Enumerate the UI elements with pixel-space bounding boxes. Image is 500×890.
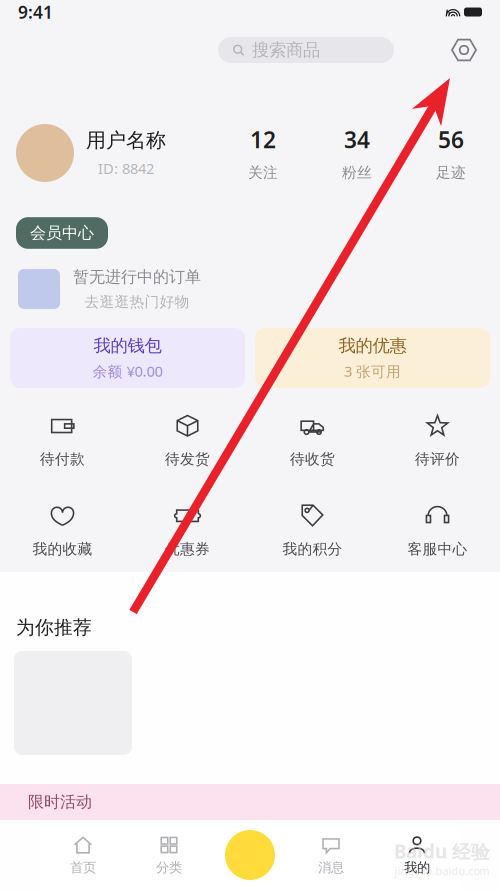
staticText: 消息 [318, 859, 344, 876]
button[interactable]: 限时活动 [0, 784, 500, 820]
staticText: 客服中心 [407, 540, 467, 558]
staticText: 9:41 [18, 0, 53, 23]
button[interactable]: 首页 [40, 831, 126, 879]
staticText: 为你推荐 [16, 616, 92, 639]
staticText: 我的 [404, 859, 430, 876]
button[interactable]: Settings [446, 32, 482, 68]
staticText: 我的钱包 [93, 335, 161, 356]
staticText: 足迹 [436, 163, 466, 181]
staticText: 我的收藏 [32, 540, 92, 558]
button[interactable]: 客服中心 [375, 496, 500, 564]
staticText: 待收货 [290, 450, 335, 468]
staticText: 搜索商品 [252, 39, 320, 61]
button[interactable]: 待评价 [375, 406, 500, 474]
staticText: 我的优惠 [338, 335, 406, 356]
staticText: 我的积分 [282, 540, 342, 558]
staticText: 34 [344, 124, 370, 154]
button[interactable]: 我的 [374, 831, 460, 879]
button[interactable]: 12 [216, 123, 310, 183]
staticText: 首页 [70, 859, 96, 876]
button[interactable]: 我的优惠 [255, 328, 490, 388]
staticText: jingyan.baidu.com [394, 864, 489, 878]
staticText: 56 [438, 124, 464, 154]
button[interactable]: 56 [404, 123, 498, 183]
button[interactable]: 我的收藏 [0, 496, 125, 564]
staticText: ID: 8842 [98, 158, 154, 178]
button[interactable]: 待收货 [250, 406, 375, 474]
staticText: 优惠券 [165, 540, 210, 558]
staticText: 去逛逛热门好物 [84, 293, 189, 311]
staticText: 分类 [156, 859, 182, 876]
button[interactable]: Scan [212, 828, 288, 882]
button[interactable]: 我的钱包 [10, 328, 245, 388]
staticText: Baidu 经验 [394, 839, 490, 864]
staticText: 限时活动 [28, 792, 92, 812]
button[interactable]: 待付款 [0, 406, 125, 474]
staticText: 余额 ¥0.00 [92, 361, 162, 381]
staticText: 关注 [248, 163, 278, 181]
button[interactable]: 消息 [288, 831, 374, 879]
staticText: 粉丝 [342, 163, 372, 181]
staticText: 待发货 [165, 450, 210, 468]
button[interactable]: 34 [310, 123, 404, 183]
staticText: 待评价 [415, 450, 460, 468]
button[interactable]: 优惠券 [125, 496, 250, 564]
button[interactable]: 我的积分 [250, 496, 375, 564]
button[interactable]: 会员中心 [16, 217, 108, 249]
staticText: 用户名称 [86, 128, 166, 153]
button[interactable]: 待发货 [125, 406, 250, 474]
staticText: 待付款 [40, 450, 85, 468]
staticText: 会员中心 [30, 223, 94, 243]
staticText: 12 [250, 124, 276, 154]
staticText: 3 张可用 [344, 361, 401, 381]
staticText: 暂无进行中的订单 [73, 267, 201, 287]
button[interactable]: 分类 [126, 831, 212, 879]
